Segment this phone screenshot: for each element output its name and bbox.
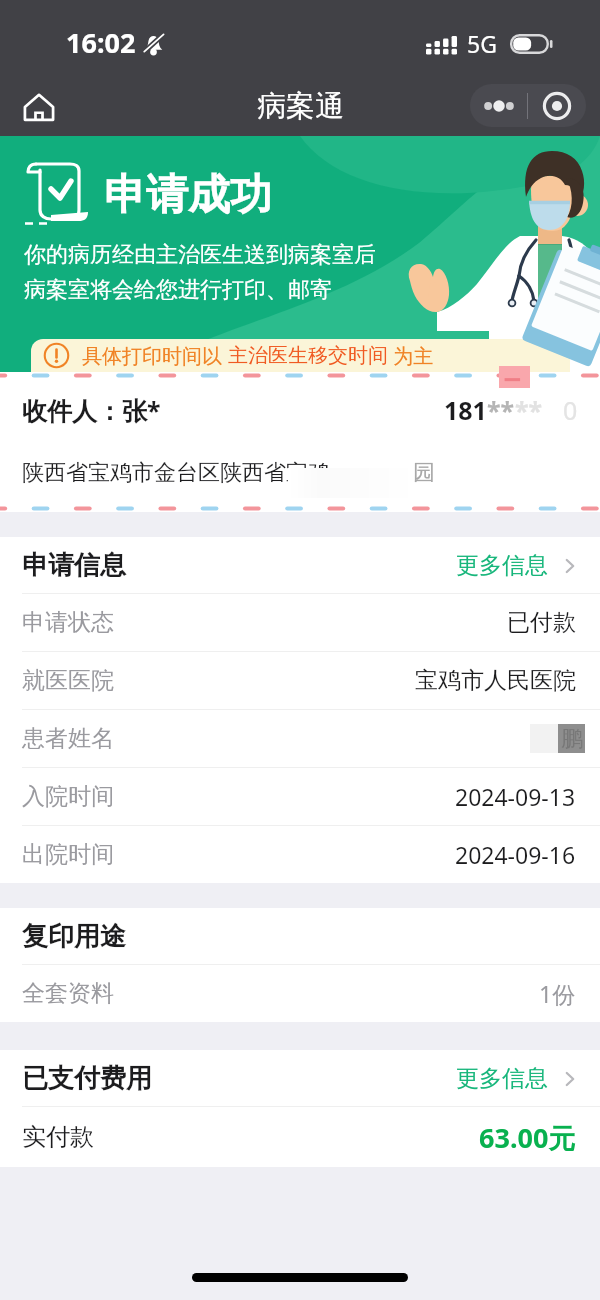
staticText: 已付款 <box>507 608 576 637</box>
staticText: 为主 <box>388 342 434 369</box>
staticText: 宝鸡市人民医院 <box>415 666 576 695</box>
button[interactable]: More <box>470 84 527 127</box>
staticText: 入院时间 <box>22 782 114 811</box>
staticText: 鹏 <box>561 725 583 753</box>
staticText: 患者姓名 <box>22 724 114 753</box>
staticText: 申请状态 <box>22 608 114 637</box>
button[interactable]: 收件人：张* <box>0 379 600 441</box>
staticText: 病案通 <box>257 88 344 125</box>
staticText: 园 <box>413 459 435 487</box>
button[interactable]: 更多信息 <box>456 1064 580 1093</box>
staticText: 收件人：张* <box>22 393 161 427</box>
staticText: 主治医生移交时间 <box>228 343 388 368</box>
button[interactable]: 更多信息 <box>456 551 580 580</box>
staticText: 申请成功 <box>104 169 272 222</box>
staticText: 全套资料 <box>22 979 114 1008</box>
staticText: 2024-09-13 <box>455 781 576 812</box>
staticText: 具体打印时间以 <box>82 342 228 369</box>
staticText: ** <box>487 393 515 427</box>
staticText: 出院时间 <box>22 840 114 869</box>
staticText: ** <box>515 393 543 427</box>
staticText: 1份 <box>539 978 576 1009</box>
staticText: 申请信息 <box>22 549 126 582</box>
staticText: 181 <box>444 393 487 427</box>
staticText: 你的病历经由主治医生送到病案室后 <box>24 241 376 269</box>
staticText: 复印用途 <box>22 920 126 953</box>
staticText: 实付款 <box>22 1122 94 1152</box>
staticText: 63.00元 <box>479 1119 576 1156</box>
staticText: 病案室将会给您进行打印、邮寄 <box>24 276 332 304</box>
staticText: 更多信息 <box>456 551 548 580</box>
staticText: 陕西省宝鸡市金台区陕西省宝鸡 <box>22 459 330 487</box>
staticText: 2024-09-16 <box>455 839 576 870</box>
staticText: 5G <box>467 28 497 59</box>
staticText: 更多信息 <box>456 1064 548 1093</box>
button[interactable]: Close mini program <box>528 84 586 127</box>
staticText: 0 <box>563 393 578 427</box>
staticText: 16:02 <box>66 24 136 61</box>
staticText: 就医医院 <box>22 666 114 695</box>
button[interactable]: Home <box>14 82 64 132</box>
staticText: 已支付费用 <box>22 1062 152 1095</box>
